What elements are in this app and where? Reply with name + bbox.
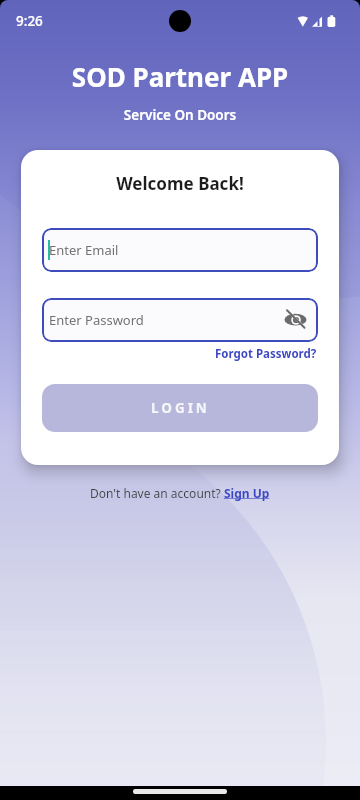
staticText: LOGIN [151,399,210,417]
staticText: Enter Password [49,311,144,329]
button[interactable]: Forgot Password? [215,346,317,362]
button[interactable]: Enter Email [42,228,318,272]
staticText: Don't have an account? [90,485,224,501]
button[interactable]: Enter Password [42,298,318,342]
button[interactable]: LOGIN [42,384,318,432]
staticText: Welcome Back! [21,172,339,195]
staticText: Service On Doors [0,106,360,124]
staticText: Enter Email [49,241,119,259]
staticText: 9:26 [16,12,43,30]
button[interactable] [284,308,308,332]
staticText: SOD Partner APP [0,59,360,94]
button[interactable]: Sign Up [224,485,270,501]
